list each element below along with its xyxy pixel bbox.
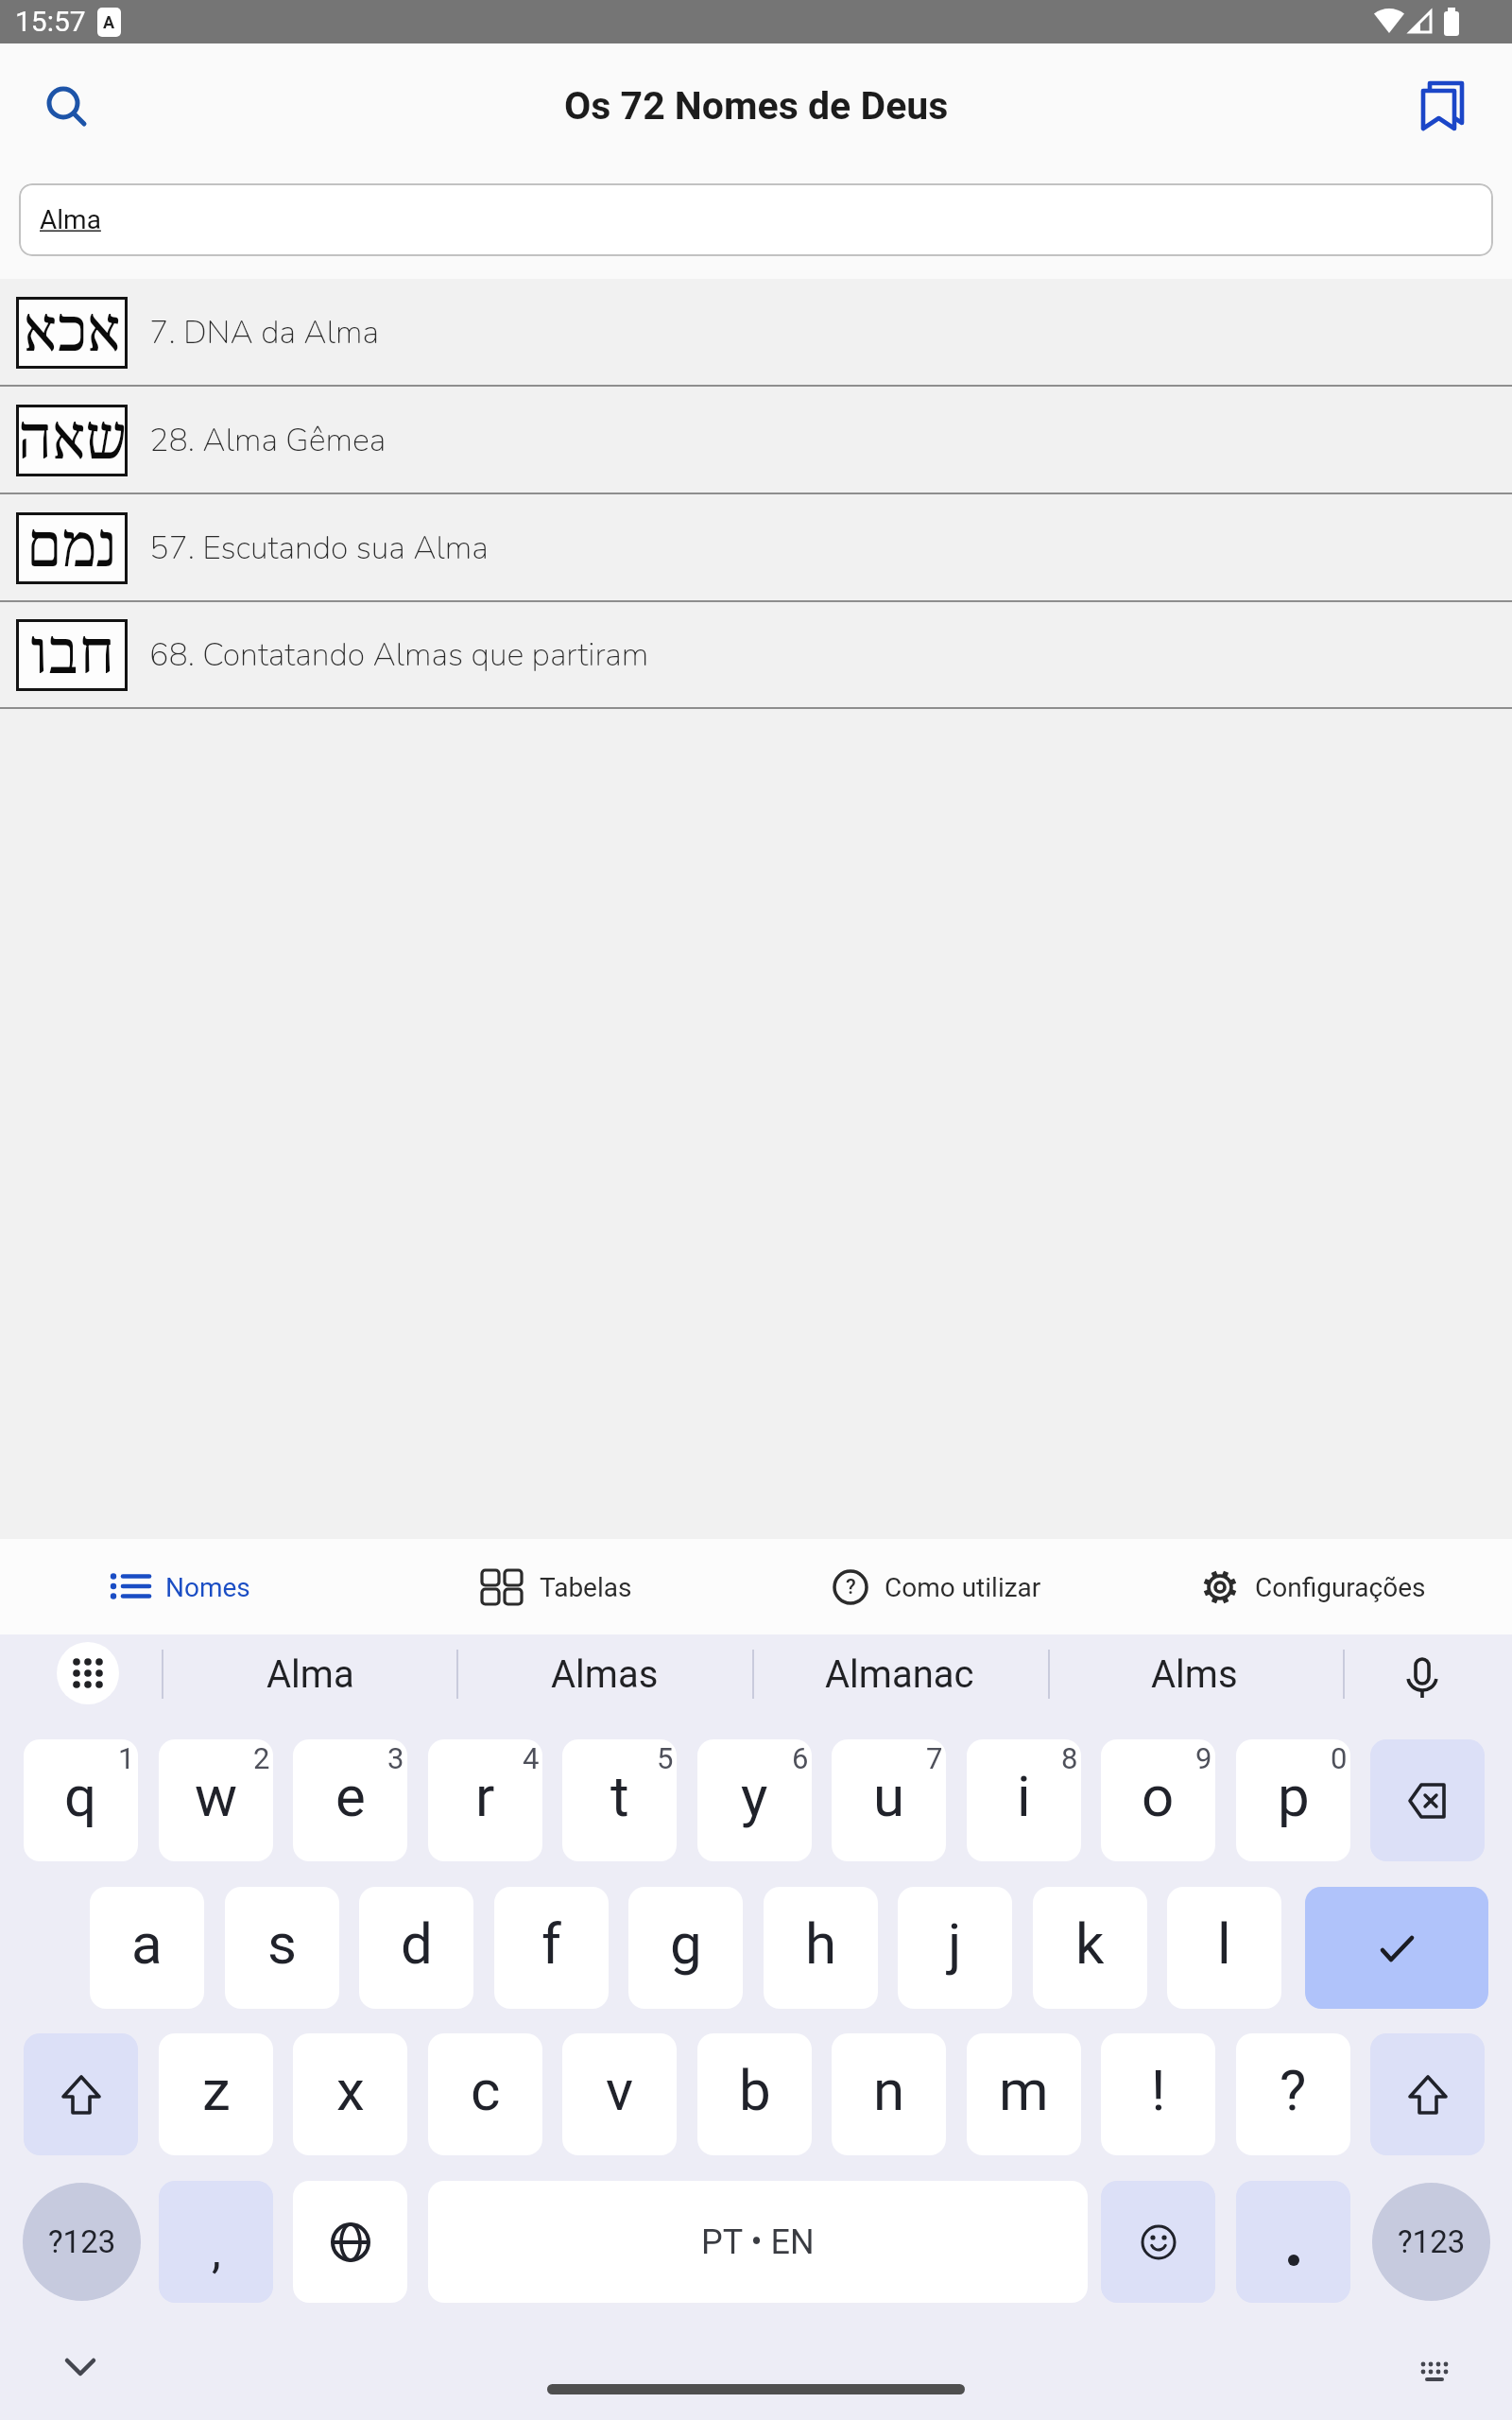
button[interactable]: !	[1101, 2033, 1215, 2155]
button[interactable]: a	[90, 1887, 204, 2009]
button[interactable]	[43, 83, 89, 129]
button[interactable]: h	[764, 1887, 878, 2009]
staticText: Alms	[1151, 1652, 1238, 1697]
button[interactable]: v	[562, 2033, 677, 2155]
button[interactable]: u	[832, 1739, 946, 1861]
button[interactable]: c	[428, 2033, 542, 2155]
staticText: o	[1142, 1763, 1175, 1829]
staticText: u	[873, 1763, 905, 1829]
staticText: Alma	[40, 204, 101, 235]
button[interactable]: Configurações	[1134, 1539, 1493, 1634]
staticText: 9	[1195, 1741, 1212, 1775]
button[interactable]: l	[1167, 1887, 1281, 2009]
staticText: l	[1217, 1910, 1231, 1977]
button[interactable]: m	[967, 2033, 1081, 2155]
staticText: r	[475, 1763, 495, 1829]
staticText: Configurações	[1255, 1572, 1426, 1603]
staticText: c	[471, 2057, 501, 2123]
staticText: p	[1278, 1763, 1310, 1829]
button[interactable]	[1370, 2033, 1485, 2155]
button[interactable]: Alms	[1062, 1634, 1327, 1714]
button[interactable]: o	[1101, 1739, 1215, 1861]
staticText: 4	[523, 1741, 540, 1775]
staticText: 6	[792, 1741, 809, 1775]
button[interactable]	[57, 1642, 119, 1704]
button[interactable]	[1416, 79, 1469, 132]
staticText: d	[401, 1910, 433, 1977]
button[interactable]	[1400, 1658, 1445, 1703]
staticText: w	[195, 1763, 238, 1829]
staticText: ?	[846, 1575, 856, 1599]
button[interactable]: ?123	[23, 2183, 141, 2301]
staticText: f	[541, 1910, 561, 1977]
staticText: 57. Escutando sua Alma	[149, 527, 489, 570]
staticText: 3	[387, 1741, 404, 1775]
button[interactable]: נמם	[0, 494, 1512, 602]
staticText: 68. Contatando Almas que partiram	[149, 633, 649, 677]
staticText: Tabelas	[540, 1572, 632, 1603]
button[interactable]	[1305, 1887, 1488, 2009]
button[interactable]: g	[628, 1887, 743, 2009]
button[interactable]: Almanac	[767, 1634, 1032, 1714]
staticText: Nomes	[165, 1572, 250, 1603]
button[interactable]: PT • EN	[428, 2181, 1088, 2303]
staticText: k	[1075, 1910, 1105, 1977]
staticText: 5	[657, 1741, 674, 1775]
button[interactable]: Tabelas	[377, 1539, 736, 1634]
staticText: e	[335, 1763, 366, 1829]
button[interactable]: k	[1033, 1887, 1147, 2009]
button[interactable]: b	[697, 2033, 812, 2155]
button[interactable]: r	[428, 1739, 542, 1861]
staticText: ?123	[48, 2223, 116, 2260]
button[interactable]: ?	[1236, 2033, 1350, 2155]
button[interactable]: t	[562, 1739, 677, 1861]
staticText: אכא	[24, 300, 121, 367]
staticText: 1	[118, 1741, 135, 1775]
button[interactable]	[1236, 2181, 1350, 2303]
button[interactable]: ?123	[1372, 2183, 1490, 2301]
button[interactable]: y	[697, 1739, 812, 1861]
staticText: חבו	[29, 622, 114, 689]
button[interactable]: Nomes	[0, 1539, 359, 1634]
button[interactable]: x	[293, 2033, 407, 2155]
button[interactable]: q	[24, 1739, 138, 1861]
staticText: m	[999, 2057, 1049, 2123]
staticText: x	[336, 2057, 365, 2123]
button[interactable]: p	[1236, 1739, 1350, 1861]
button[interactable]: חבו	[0, 601, 1512, 709]
button[interactable]: שאה	[0, 387, 1512, 494]
button[interactable]: f	[494, 1887, 609, 2009]
button[interactable]: Almas	[472, 1634, 737, 1714]
button[interactable]: ?	[757, 1539, 1116, 1634]
button[interactable]: e	[293, 1739, 407, 1861]
button[interactable]	[1101, 2181, 1215, 2303]
staticText: נמם	[28, 515, 116, 582]
button[interactable]: ,	[159, 2181, 273, 2303]
button[interactable]: d	[359, 1887, 473, 2009]
button[interactable]: Alma	[178, 1634, 442, 1714]
staticText: h	[805, 1910, 837, 1977]
button[interactable]: j	[898, 1887, 1012, 2009]
staticText: j	[948, 1910, 962, 1977]
button[interactable]: z	[159, 2033, 273, 2155]
staticText: ?	[1280, 2057, 1307, 2123]
button[interactable]: Alma	[19, 183, 1493, 256]
staticText: 0	[1331, 1741, 1348, 1775]
button[interactable]: i	[967, 1739, 1081, 1861]
staticText: ?123	[1398, 2223, 1466, 2260]
button[interactable]: אכא	[0, 279, 1512, 387]
staticText: !	[1151, 2057, 1166, 2123]
staticText: 7. DNA da Alma	[149, 311, 379, 354]
button[interactable]	[293, 2181, 407, 2303]
staticText: 28. Alma Gêmea	[149, 419, 387, 462]
staticText: i	[1017, 1763, 1031, 1829]
button[interactable]: n	[832, 2033, 946, 2155]
button[interactable]: s	[225, 1887, 339, 2009]
button[interactable]: w	[159, 1739, 273, 1861]
button[interactable]	[1370, 1739, 1485, 1861]
button[interactable]	[24, 2033, 138, 2155]
staticText: y	[741, 1763, 768, 1829]
staticText: ,	[212, 2223, 221, 2279]
staticText: g	[670, 1910, 702, 1977]
staticText: z	[202, 2057, 231, 2123]
